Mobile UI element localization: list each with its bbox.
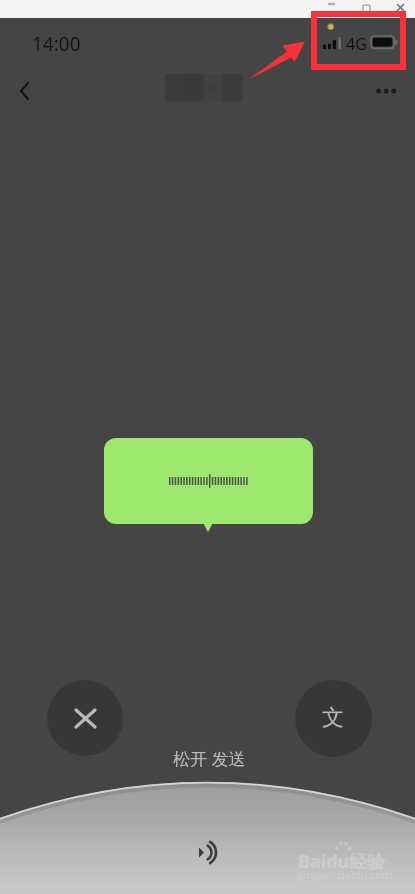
staticText: 4G (346, 33, 367, 55)
button[interactable]: Voice message (104, 438, 313, 524)
staticText: 松开 发送 (173, 747, 246, 770)
button[interactable]: Minimize (314, 0, 349, 18)
staticText: 文 (322, 704, 344, 732)
button[interactable]: Convert speech to text (295, 680, 372, 757)
staticText: 14:00 (32, 31, 81, 57)
button[interactable]: Recording in progress (190, 838, 222, 866)
button[interactable]: Maximize (349, 0, 384, 18)
staticText: jingyan.baidu.com (297, 867, 393, 882)
button[interactable]: Close (384, 0, 415, 18)
button[interactable]: More options (365, 68, 410, 113)
staticText: Baidu经验 (298, 849, 386, 874)
button[interactable]: Cancel (47, 680, 123, 756)
button[interactable]: Back (1, 68, 46, 113)
